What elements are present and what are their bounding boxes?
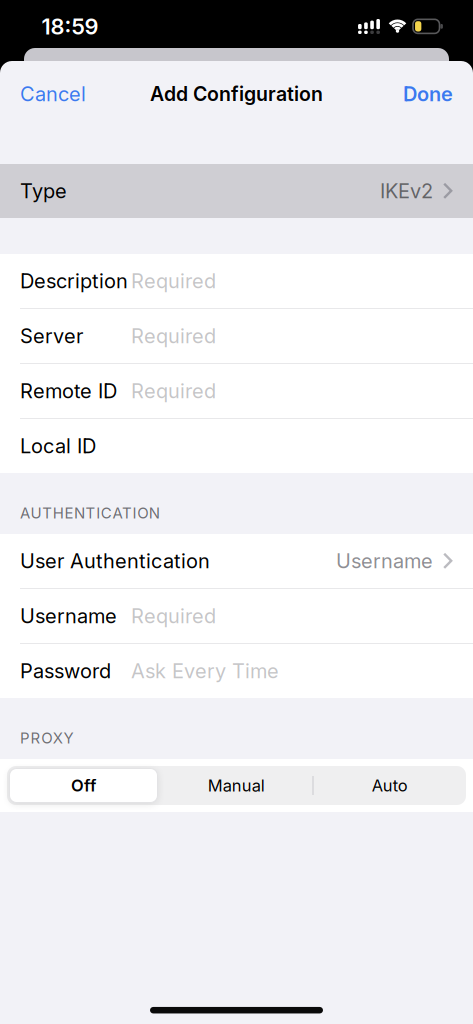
button[interactable]: Manual <box>160 766 312 805</box>
button[interactable]: Done <box>403 82 453 106</box>
button[interactable]: Local ID <box>0 419 473 473</box>
button[interactable]: Auto <box>313 766 466 805</box>
button[interactable]: User Authentication <box>0 534 473 588</box>
button[interactable]: Server <box>0 309 473 363</box>
button[interactable]: Remote ID <box>0 364 473 418</box>
staticText: Server <box>20 324 83 348</box>
button[interactable]: Description <box>0 254 473 308</box>
staticText: Remote ID <box>20 379 117 403</box>
staticText: Required <box>131 604 216 628</box>
staticText: Add Configuration <box>150 82 323 106</box>
button[interactable]: Password <box>0 644 473 698</box>
staticText: User Authentication <box>20 549 210 573</box>
staticText: Username <box>336 549 433 573</box>
staticText: Local ID <box>20 434 96 458</box>
staticText: IKEv2 <box>380 179 433 203</box>
staticText: Off <box>71 775 96 795</box>
button[interactable]: Username <box>0 589 473 643</box>
staticText: Ask Every Time <box>131 659 279 683</box>
staticText: Type <box>20 179 67 203</box>
staticText: Required <box>131 324 216 348</box>
staticText: PROXY <box>20 729 73 747</box>
staticText: Cancel <box>20 82 86 106</box>
staticText: Password <box>20 659 111 683</box>
staticText: Done <box>403 82 453 106</box>
staticText: Username <box>20 604 117 628</box>
button[interactable]: Cancel <box>20 82 86 106</box>
staticText: Required <box>131 379 216 403</box>
staticText: Description <box>20 269 128 293</box>
button[interactable]: Type <box>0 164 473 218</box>
staticText: Auto <box>372 775 408 795</box>
staticText: Required <box>131 269 216 293</box>
staticText: 18:59 <box>41 13 98 40</box>
button[interactable]: Off <box>7 766 160 805</box>
staticText: Manual <box>208 775 265 795</box>
staticText: AUTHENTICATION <box>20 504 160 522</box>
